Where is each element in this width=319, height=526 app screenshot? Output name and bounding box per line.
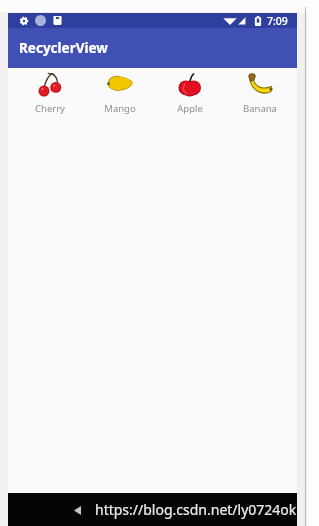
button[interactable]: Mango <box>85 68 155 119</box>
staticText: RecyclerView <box>19 39 108 57</box>
staticText: Mango <box>104 102 136 115</box>
button[interactable]: Cherry <box>15 68 85 119</box>
staticText: Banana <box>243 102 277 115</box>
button[interactable]: Back <box>66 499 88 521</box>
staticText: https://blog.csdn.net/ly0724ok <box>95 500 315 519</box>
button[interactable]: Apple <box>155 68 225 119</box>
staticText: 7:09 <box>267 14 288 28</box>
button[interactable]: Banana <box>225 68 295 119</box>
staticText: Cherry <box>35 102 65 115</box>
staticText: Apple <box>177 102 203 115</box>
